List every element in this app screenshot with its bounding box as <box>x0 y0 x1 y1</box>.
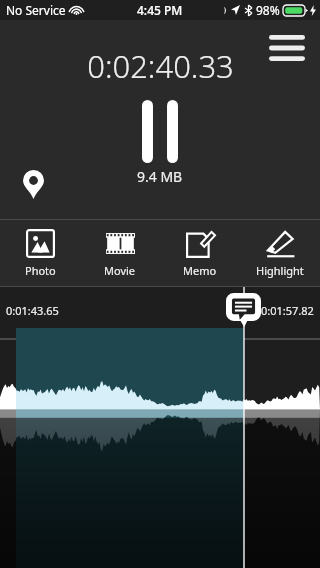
staticText: 98% <box>256 2 280 18</box>
staticText: Movie <box>104 263 136 278</box>
staticText: 4:45 PM <box>137 2 183 18</box>
staticText: Photo <box>25 263 56 278</box>
staticText: 0:01:57.82 <box>261 303 314 318</box>
button[interactable]: Movie <box>80 220 160 286</box>
button[interactable]: Location <box>18 168 48 200</box>
button[interactable]: Pause <box>132 99 188 163</box>
staticText: No Service <box>6 2 66 18</box>
button[interactable]: Highlight <box>240 220 320 286</box>
staticText: Highlight <box>256 263 304 278</box>
staticText: 0:02:40.33 <box>87 45 234 87</box>
staticText: 9.4 MB <box>137 167 183 186</box>
button[interactable]: Memo marker <box>226 293 261 327</box>
button[interactable]: Menu <box>268 33 306 63</box>
button[interactable]: Memo <box>160 220 240 286</box>
staticText: Memo <box>183 263 217 278</box>
button[interactable]: Photo <box>0 220 80 286</box>
staticText: 0:01:43.65 <box>6 303 59 318</box>
